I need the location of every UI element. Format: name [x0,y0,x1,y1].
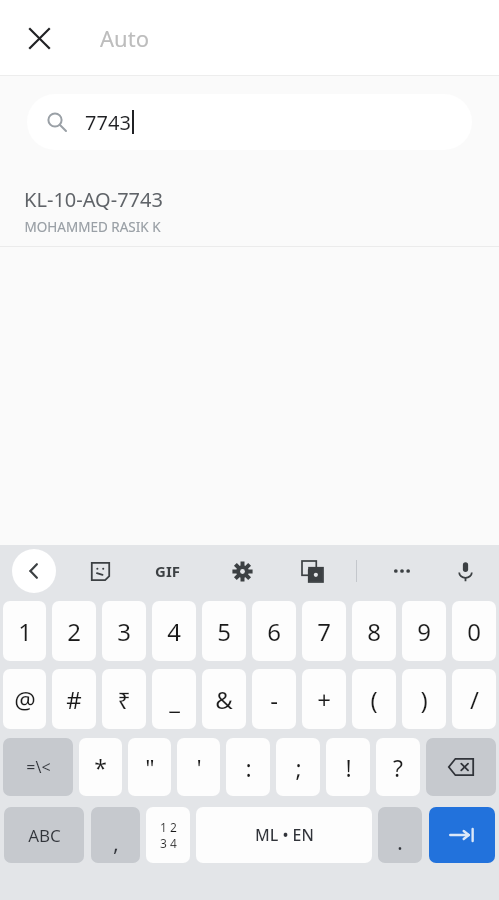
staticText: / [470,683,479,716]
button[interactable]: Enter [429,807,495,863]
staticText: 6 [267,615,281,648]
button[interactable]: 2 [52,601,96,661]
staticText: 5 [217,615,231,648]
button[interactable]: / [452,669,496,729]
staticText: 7743 [85,109,131,136]
button[interactable]: KL-10-AQ-7743 [0,168,499,246]
button[interactable]: ? [376,738,420,796]
staticText: 3 4 [160,835,177,851]
button[interactable]: 4 [152,601,196,661]
button[interactable]: _ [152,669,196,729]
button[interactable]: 6 [252,601,296,661]
button[interactable]: + [302,669,346,729]
staticText: 4 [167,615,181,648]
staticText: ₹ [117,684,131,715]
button[interactable]: Backspace [426,738,496,796]
button[interactable]: " [128,738,171,796]
button[interactable]: 9 [402,601,446,661]
button[interactable]: ML • EN [196,807,372,863]
button[interactable]: Close [16,15,62,61]
staticText: 8 [367,615,381,648]
staticText: # [66,683,82,716]
button[interactable]: ! [326,738,370,796]
button[interactable]: Stickers [78,549,122,593]
button[interactable]: ABC [4,807,84,863]
button[interactable]: Translate [290,549,334,593]
staticText: GIF [155,561,180,581]
staticText: 2 [67,615,81,648]
staticText: ML • EN [255,824,314,846]
button[interactable]: ) [402,669,446,729]
staticText: ) [420,683,428,716]
staticText: =\< [26,756,51,778]
staticText: ; [295,752,302,783]
button[interactable]: 7743 [27,94,472,150]
staticText: ABC [28,824,61,847]
button[interactable]: @ [3,669,46,729]
staticText: _ [169,683,180,716]
button[interactable]: & [202,669,246,729]
button[interactable]: Back [12,549,56,593]
staticText: 1 [18,615,32,648]
staticText: ? [393,752,403,783]
staticText: ! [345,752,352,783]
staticText: MOHAMMED RASIK K [24,218,161,236]
button[interactable]: # [52,669,96,729]
button[interactable]: . [378,807,422,863]
button[interactable]: ₹ [102,669,146,729]
staticText: 3 [117,615,131,648]
staticText: KL-10-AQ-7743 [24,186,163,213]
staticText: ' [196,752,202,783]
staticText: + [317,683,331,716]
button[interactable]: * [79,738,122,796]
staticText: 1 2 [160,819,177,835]
button[interactable]: 3 [102,601,146,661]
staticText: 0 [467,615,481,648]
button[interactable]: Settings [220,549,264,593]
staticText: - [270,683,278,716]
button[interactable]: : [226,738,270,796]
staticText: * [94,752,107,783]
button[interactable]: More options [380,549,424,593]
staticText: , [113,827,119,857]
button[interactable]: 7 [302,601,346,661]
button[interactable]: =\< [3,738,73,796]
staticText: : [245,752,252,783]
button[interactable]: 1 [3,601,46,661]
staticText: Auto [100,23,149,53]
staticText: " [145,752,155,783]
button[interactable]: - [252,669,296,729]
staticText: & [215,683,233,716]
button[interactable]: 0 [452,601,496,661]
button[interactable]: 5 [202,601,246,661]
staticText: . [397,826,403,856]
button[interactable]: Numeric keypad [146,807,190,863]
staticText: 9 [417,615,431,648]
staticText: 7 [317,615,331,648]
staticText: ( [370,683,378,716]
button[interactable]: ; [276,738,320,796]
staticText: @ [14,683,36,716]
button[interactable]: GIF [145,549,189,593]
button[interactable]: ( [352,669,396,729]
button[interactable]: Voice input [443,549,487,593]
button[interactable]: 8 [352,601,396,661]
button[interactable]: , [91,807,140,863]
button[interactable]: ' [177,738,220,796]
